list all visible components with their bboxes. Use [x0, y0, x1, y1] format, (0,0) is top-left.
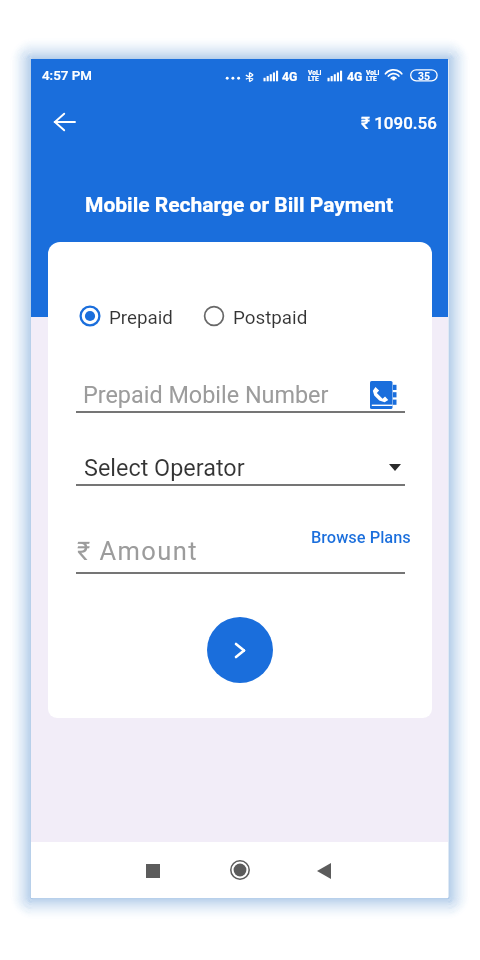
staticText: VoLI	[366, 69, 380, 77]
staticText: Postpaid	[233, 307, 308, 329]
staticText: ₹ 1090.56	[361, 113, 437, 133]
staticText: LTE	[308, 75, 319, 83]
button[interactable]: Postpaid	[201, 301, 311, 335]
staticText: 4G	[347, 70, 363, 84]
button[interactable]: Browse Plans	[305, 524, 411, 550]
button[interactable]: Pick contact	[369, 380, 399, 409]
button[interactable]: Select Operator	[76, 449, 405, 486]
staticText: Mobile Recharge or Bill Payment	[85, 193, 394, 218]
staticText: ₹ Amount	[77, 536, 199, 566]
button[interactable]: Prepaid	[77, 301, 176, 335]
button[interactable]: Recents	[125, 846, 181, 896]
staticText: LTE	[366, 75, 377, 83]
staticText: Prepaid Mobile Number	[83, 381, 329, 408]
staticText: 4:57 PM	[42, 68, 93, 84]
staticText: Prepaid	[109, 307, 173, 329]
staticText: 4G	[282, 70, 298, 84]
button[interactable]: Back	[44, 102, 84, 142]
button[interactable]: Continue	[207, 617, 273, 683]
staticText: VoLI	[308, 69, 322, 77]
staticText: 35	[418, 70, 430, 82]
staticText: Select Operator	[84, 454, 245, 481]
button[interactable]: Back	[296, 846, 352, 896]
button[interactable]: ₹ 1090.56	[321, 107, 437, 139]
button[interactable]: Home	[212, 845, 268, 895]
staticText: Browse Plans	[311, 528, 411, 547]
